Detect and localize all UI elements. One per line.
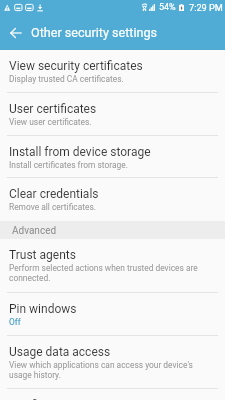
button[interactable]: Install from device storage (0, 136, 225, 177)
button[interactable]: Clear credentials (0, 178, 225, 221)
button[interactable]: Notification access (0, 389, 225, 400)
staticText: Pin windows (9, 302, 77, 316)
button[interactable]: Navigate up (5, 22, 26, 43)
button[interactable]: User certificates (0, 93, 225, 135)
staticText: Clear credentials (9, 187, 99, 201)
staticText: View which applications can access your … (9, 360, 216, 380)
staticText: 7:29 PM (189, 2, 223, 13)
staticText: User certificates (9, 102, 97, 116)
button[interactable]: Usage data access (0, 336, 225, 388)
staticText: Perform selected actions when trusted de… (9, 263, 216, 283)
staticText: Notification access (9, 398, 112, 400)
staticText: Off (9, 317, 21, 327)
staticText: Install certificates from storage. (9, 160, 128, 170)
staticText: Install from device storage (9, 145, 151, 159)
button[interactable]: Pin windows (0, 293, 225, 335)
button[interactable]: View security certificates (0, 50, 225, 92)
staticText: Advanced (12, 225, 57, 237)
staticText: Trust agents (9, 248, 76, 262)
staticText: 54% (159, 2, 176, 13)
staticText: View security certificates (9, 59, 143, 73)
staticText: Remove all certificates. (9, 202, 96, 212)
button[interactable]: Trust agents (0, 239, 225, 292)
staticText: View user certificates. (9, 117, 92, 127)
staticText: Display trusted CA certificates. (9, 74, 124, 84)
staticText: Usage data access (9, 345, 111, 359)
staticText: Other security settings (31, 25, 158, 40)
